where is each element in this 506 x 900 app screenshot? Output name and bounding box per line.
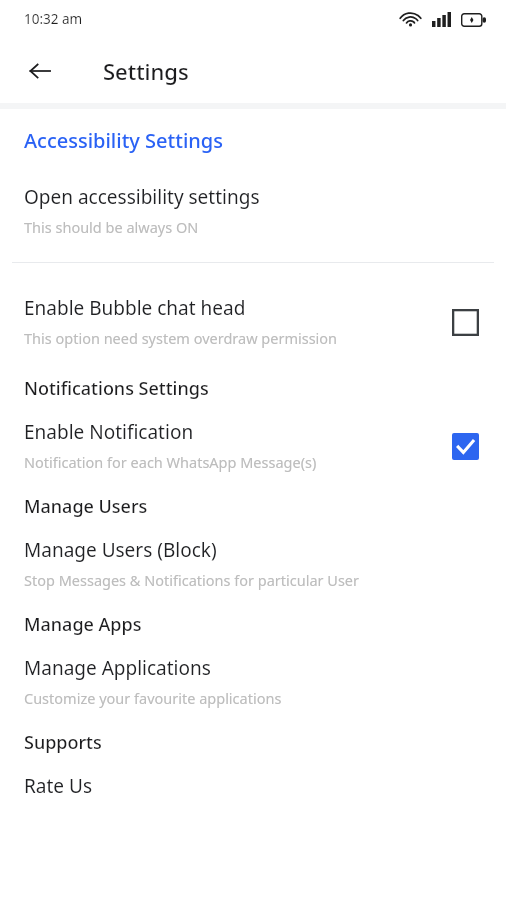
staticText: Notifications Settings (24, 376, 209, 401)
staticText: Manage Users (24, 494, 148, 519)
staticText: Accessibility Settings (24, 127, 223, 154)
staticText: Open accessibility settings (24, 184, 260, 210)
button[interactable]: Supports (0, 730, 506, 755)
button[interactable]: Open accessibility settings (0, 184, 506, 237)
staticText: Enable Notification (24, 419, 194, 445)
staticText: Settings (103, 56, 189, 86)
button[interactable]: Rate Us (0, 773, 506, 799)
button[interactable]: Manage Applications (0, 655, 506, 708)
staticText: Notification for each WhatsApp Message(s… (24, 452, 317, 472)
button[interactable]: Manage Users (Block) (0, 537, 506, 590)
staticText: Manage Users (Block) (24, 537, 217, 563)
button[interactable]: Checked (450, 431, 480, 461)
staticText: Manage Applications (24, 655, 211, 681)
button[interactable]: Manage Users (0, 494, 506, 519)
button[interactable]: Accessibility Settings (0, 127, 506, 154)
staticText: Stop Messages & Notifications for partic… (24, 570, 360, 590)
staticText: Manage Apps (24, 612, 142, 637)
staticText: This option need system overdraw permiss… (24, 328, 338, 348)
staticText: Enable Bubble chat head (24, 295, 246, 321)
button[interactable]: Unchecked (450, 307, 480, 337)
button[interactable]: Enable Bubble chat head (0, 295, 506, 348)
staticText: Customize your favourite applications (24, 688, 282, 708)
button[interactable]: Enable Notification (0, 419, 506, 472)
button[interactable]: Manage Apps (0, 612, 506, 637)
staticText: This should be always ON (24, 217, 199, 237)
button[interactable]: Back (18, 49, 62, 93)
staticText: 10:32 am (24, 10, 83, 28)
staticText: Rate Us (24, 773, 92, 799)
staticText: Supports (24, 730, 102, 755)
button[interactable]: Notifications Settings (0, 376, 506, 401)
